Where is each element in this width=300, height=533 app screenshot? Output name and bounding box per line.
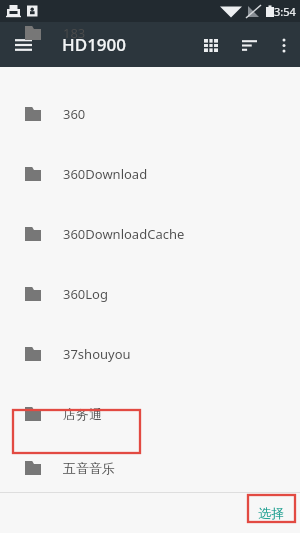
button[interactable]: More options	[268, 29, 300, 61]
staticText: 360DownloadCache	[63, 225, 185, 243]
button[interactable]: 五音音乐	[0, 444, 300, 492]
button[interactable]: 360Log	[0, 264, 300, 324]
staticText: 183	[63, 24, 86, 41]
button[interactable]: 360DownloadCache	[0, 204, 300, 264]
button[interactable]: 360Download	[0, 144, 300, 204]
staticText: 360Download	[63, 165, 148, 183]
staticText: 37shouyou	[63, 345, 131, 363]
button[interactable]: 店务通	[0, 384, 300, 444]
staticText: 店务通	[63, 406, 102, 422]
staticText: 360	[63, 105, 86, 123]
staticText: 五音音乐	[63, 460, 115, 476]
staticText: 3:54	[274, 4, 296, 19]
button[interactable]: 37shouyou	[0, 324, 300, 384]
staticText: 选择	[258, 505, 284, 521]
staticText: 360Log	[63, 285, 108, 303]
button[interactable]: 选择	[247, 499, 295, 527]
button[interactable]: Open navigation drawer	[6, 28, 40, 62]
button[interactable]: Sort	[230, 26, 268, 64]
staticText: HD1900	[62, 33, 127, 56]
button[interactable]: Grid view	[192, 26, 230, 64]
button[interactable]: 360	[0, 84, 300, 144]
